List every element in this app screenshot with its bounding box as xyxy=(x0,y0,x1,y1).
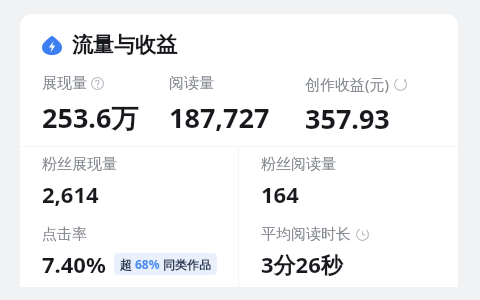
staticText: 164 xyxy=(261,179,299,209)
staticText: 超 xyxy=(120,257,132,272)
other: 流量与收益 xyxy=(42,35,62,55)
button[interactable]: 点击率 xyxy=(20,217,238,287)
staticText: 平均阅读时长 xyxy=(261,225,351,244)
staticText: 68% xyxy=(135,256,160,272)
staticText: 粉丝阅读量 xyxy=(261,155,336,174)
staticText: 创作收益(元) xyxy=(305,74,390,94)
staticText: 阅读量 xyxy=(169,74,214,93)
button[interactable]: 平均阅读时长 xyxy=(239,217,458,287)
button[interactable]: 创作收益(元) xyxy=(305,74,444,137)
staticText: 点击率 xyxy=(42,225,87,244)
staticText: 187,727 xyxy=(169,99,270,136)
button[interactable]: 展现量 xyxy=(42,74,169,136)
button[interactable]: 阅读量 xyxy=(169,74,305,136)
button[interactable]: 粉丝阅读量 xyxy=(239,147,458,217)
staticText: 2,614 xyxy=(42,179,99,209)
staticText: 357.93 xyxy=(305,100,390,137)
staticText: 同类作品 xyxy=(163,257,211,272)
staticText: 3分26秒 xyxy=(261,249,343,279)
staticText: 流量与收益 xyxy=(72,32,177,58)
staticText: 粉丝展现量 xyxy=(42,155,117,174)
button[interactable]: 流量与收益 xyxy=(20,14,458,60)
staticText: 7.40% xyxy=(42,249,106,279)
staticText: 253.6万 xyxy=(42,99,139,136)
button[interactable]: 粉丝展现量 xyxy=(20,147,238,217)
staticText: 展现量 xyxy=(42,74,87,93)
